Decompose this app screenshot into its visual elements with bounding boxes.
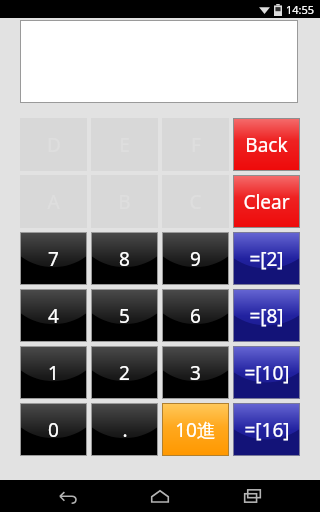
staticText: =[2]: [249, 246, 284, 272]
button[interactable]: 3: [162, 346, 229, 399]
staticText: 1: [48, 360, 59, 386]
staticText: =[10]: [244, 360, 290, 386]
staticText: =[16]: [244, 417, 290, 443]
staticText: 2: [119, 360, 130, 386]
button[interactable]: Recent apps: [228, 480, 276, 512]
button[interactable]: 4: [20, 289, 87, 342]
staticText: 3: [190, 360, 201, 386]
staticText: Back: [245, 132, 288, 158]
button[interactable]: Home: [136, 480, 184, 512]
button[interactable]: 2: [91, 346, 158, 399]
button[interactable]: Back: [44, 480, 92, 512]
button[interactable]: 1: [20, 346, 87, 399]
staticText: 5: [119, 303, 130, 329]
staticText: 9: [190, 246, 201, 272]
button[interactable]: =[8]: [233, 289, 300, 342]
staticText: 4: [48, 303, 59, 329]
button[interactable]: 5: [91, 289, 158, 342]
button[interactable]: =[16]: [233, 403, 300, 456]
staticText: 14:55: [286, 2, 315, 17]
staticText: =[8]: [249, 303, 284, 329]
button[interactable]: Back: [233, 118, 300, 171]
button[interactable]: 9: [162, 232, 229, 285]
staticText: .: [122, 417, 128, 443]
button[interactable]: =[2]: [233, 232, 300, 285]
staticText: 10進: [175, 417, 216, 443]
button[interactable]: 8: [91, 232, 158, 285]
button[interactable]: 6: [162, 289, 229, 342]
button[interactable]: 0: [20, 403, 87, 456]
button[interactable]: =[10]: [233, 346, 300, 399]
staticText: 6: [190, 303, 201, 329]
button[interactable]: Clear: [233, 175, 300, 228]
staticText: 7: [48, 246, 59, 272]
staticText: 8: [119, 246, 130, 272]
button[interactable]: 7: [20, 232, 87, 285]
button[interactable]: 10進: [162, 403, 229, 456]
staticText: 0: [48, 417, 59, 443]
button[interactable]: .: [91, 403, 158, 456]
staticText: Clear: [243, 189, 290, 215]
